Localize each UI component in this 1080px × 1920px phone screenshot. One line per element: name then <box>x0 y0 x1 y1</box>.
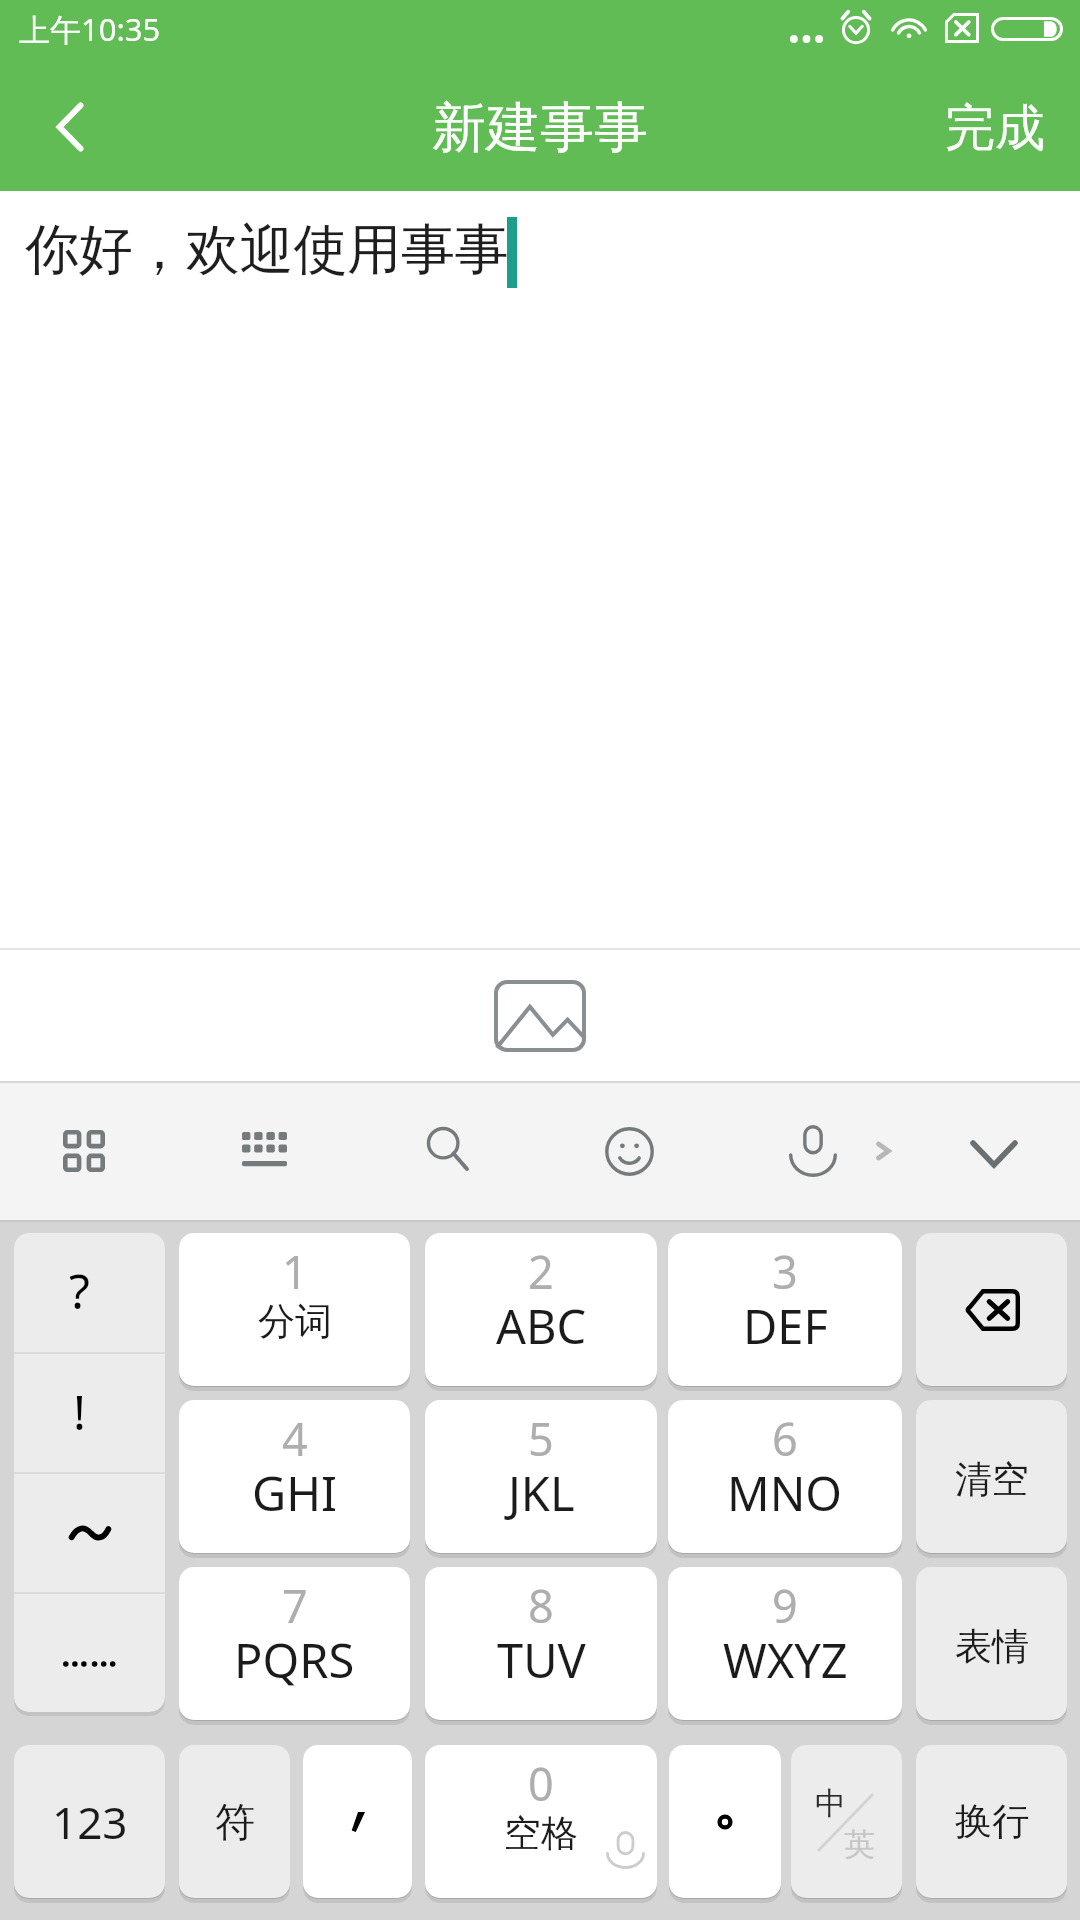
button[interactable]: 完成 <box>920 66 1070 191</box>
button[interactable]: 6 <box>668 1400 902 1553</box>
staticText: WXYZ <box>723 1628 848 1692</box>
button[interactable]: 删除 <box>916 1233 1067 1386</box>
button[interactable]: 插入图片 <box>494 980 586 1052</box>
button[interactable]: 8 <box>425 1567 657 1720</box>
staticText: 上午10:35 <box>19 8 161 50</box>
staticText: PQRS <box>234 1628 355 1692</box>
staticText: 换行 <box>955 1798 1029 1845</box>
staticText: 分词 <box>258 1298 332 1345</box>
staticText: 1 <box>282 1241 308 1302</box>
button[interactable]: 7 <box>179 1567 410 1720</box>
staticText: MNO <box>727 1461 843 1525</box>
button[interactable]: 收起键盘 <box>942 1083 1046 1220</box>
staticText: 符 <box>215 1797 255 1847</box>
button[interactable]: 搜索 <box>396 1083 500 1220</box>
button[interactable] <box>14 1474 165 1592</box>
button[interactable]: 0 <box>425 1745 657 1898</box>
staticText: 9 <box>772 1575 798 1636</box>
staticText: ! <box>73 1379 86 1444</box>
button[interactable]: ? <box>14 1233 165 1352</box>
staticText: GHI <box>252 1461 337 1525</box>
button[interactable]: 中 <box>791 1745 902 1898</box>
button[interactable]: 表情 <box>916 1567 1067 1720</box>
staticText: 新建事事 <box>432 94 648 162</box>
staticText: 8 <box>528 1575 554 1636</box>
button[interactable]: 3 <box>668 1233 902 1386</box>
button[interactable]: 键盘 <box>212 1083 316 1220</box>
other: 删除 <box>964 1289 1020 1331</box>
button[interactable]: 9 <box>668 1567 902 1720</box>
staticText: 表情 <box>955 1623 1029 1670</box>
staticText: 123 <box>52 1792 128 1852</box>
staticText: 3 <box>772 1241 798 1302</box>
staticText: 完成 <box>945 97 1045 160</box>
staticText: DEF <box>743 1294 828 1358</box>
staticText: 你好，欢迎使用事事 <box>25 216 509 284</box>
button[interactable]: ! <box>14 1354 165 1472</box>
button[interactable]: 网格 <box>32 1083 136 1220</box>
button[interactable]: 符 <box>179 1745 290 1898</box>
button[interactable]: 123 <box>14 1745 165 1898</box>
button[interactable]: 换行 <box>916 1745 1067 1898</box>
button[interactable]: 5 <box>425 1400 657 1553</box>
staticText: 7 <box>282 1575 308 1636</box>
staticText: 空格 <box>504 1810 578 1857</box>
button[interactable] <box>14 1594 165 1712</box>
staticText: 2 <box>528 1241 554 1302</box>
button[interactable]: 1 <box>179 1233 410 1386</box>
button[interactable] <box>669 1745 781 1898</box>
button[interactable]: 4 <box>179 1400 410 1553</box>
staticText: 英 <box>844 1825 875 1864</box>
staticText: 0 <box>528 1753 554 1814</box>
staticText: TUV <box>497 1628 586 1692</box>
staticText: ? <box>69 1258 90 1323</box>
staticText: ABC <box>496 1294 587 1358</box>
staticText: 4 <box>282 1408 308 1469</box>
button[interactable] <box>303 1745 412 1898</box>
staticText: JKL <box>508 1461 575 1525</box>
button[interactable]: 清空 <box>916 1400 1067 1553</box>
button[interactable]: 表情 <box>577 1083 681 1220</box>
staticText: 6 <box>772 1408 798 1469</box>
button[interactable]: 返回 <box>10 66 130 191</box>
button[interactable]: 2 <box>425 1233 657 1386</box>
button[interactable]: 语音输入 <box>761 1083 865 1220</box>
staticText: 清空 <box>955 1456 1029 1503</box>
staticText: 中 <box>815 1784 846 1823</box>
staticText: 5 <box>528 1408 554 1469</box>
